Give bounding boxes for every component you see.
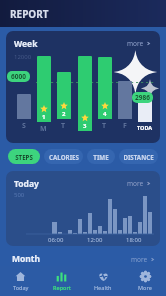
staticText: 18:00 [126,236,142,244]
button[interactable]: Health [82,266,124,296]
staticText: S [22,121,26,131]
staticText: Today [13,284,29,291]
staticText: 3 [83,122,87,130]
staticText: more [127,179,144,188]
staticText: DISTANCE [123,153,154,161]
staticText: 500 [14,191,25,199]
staticText: 12:00 [87,236,103,244]
staticText: REPORT [10,7,49,21]
staticText: TODAY [137,124,152,131]
staticText: Health [94,284,112,291]
button[interactable]: Today [0,266,41,296]
button[interactable]: TIME [87,149,115,164]
staticText: 2 [62,110,66,118]
button[interactable]: Week [6,31,160,143]
staticText: Month [12,253,41,265]
staticText: 1 [42,113,46,121]
staticText: 6000 [11,72,26,81]
staticText: F [123,121,127,131]
staticText: more [131,255,148,264]
staticText: 4 [103,110,107,118]
staticText: 12000 [14,53,32,61]
staticText: CALORIES [49,153,79,161]
staticText: Week [14,38,38,50]
staticText: more [127,39,144,48]
button[interactable]: Month [12,253,155,265]
button[interactable]: DISTANCE [119,149,158,164]
button[interactable]: more [125,177,153,190]
staticText: STEPS [15,153,33,161]
button[interactable]: STEPS [8,149,40,164]
staticText: T [61,121,66,131]
button[interactable]: More [124,266,166,296]
staticText: 06:00 [48,236,64,244]
staticText: Today [14,178,39,190]
button[interactable]: more [125,37,153,50]
button[interactable]: Today [6,171,160,246]
staticText: More [138,284,152,291]
button[interactable]: CALORIES [44,149,83,164]
staticText: 2986 [135,93,150,102]
staticText: Report [53,284,71,291]
button[interactable]: Report [41,266,82,296]
staticText: M [40,124,47,131]
staticText: T [102,121,107,131]
staticText: TIME [93,153,109,161]
